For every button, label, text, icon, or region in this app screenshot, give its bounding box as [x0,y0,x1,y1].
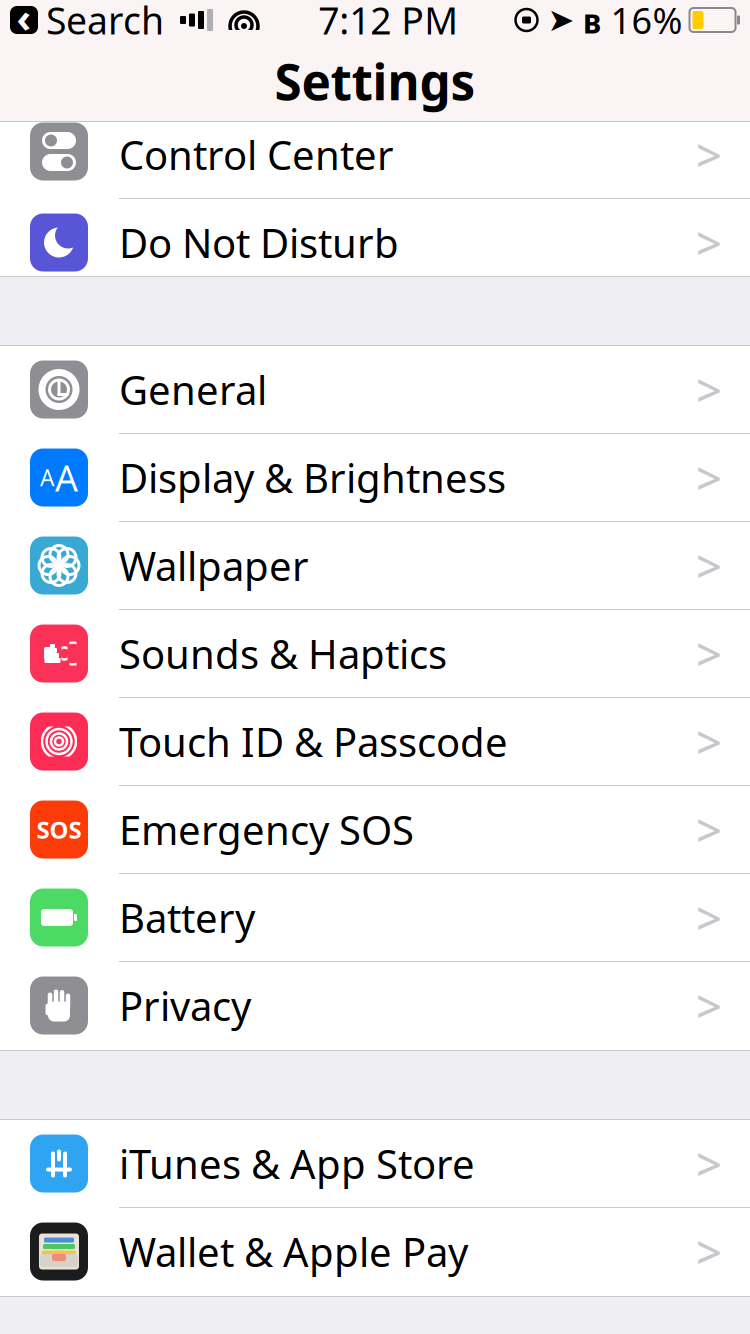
staticText: > [696,1133,722,1194]
staticText: Touch ID & Passcode [119,715,508,768]
staticText: 7:12 PM [318,0,458,45]
button[interactable]: SOS [0,786,750,874]
staticText: Do Not Disturb [119,216,399,269]
staticText: Settings [274,48,475,114]
button[interactable]: A [0,434,750,522]
staticText: > [696,623,722,684]
staticText: ‹ [16,0,31,43]
staticText: Battery [119,891,255,944]
staticText: > [696,359,722,420]
staticText: > [696,212,722,273]
staticText: > [696,447,722,508]
staticText: General [119,363,267,416]
staticText: Control Center [119,128,394,181]
staticText: ➤ [547,2,574,38]
staticText: 16% [610,0,682,44]
staticText: Wallpaper [119,539,309,592]
staticText: > [696,887,722,948]
staticText: Privacy [119,979,251,1032]
staticText: Emergency SOS [119,803,414,856]
button[interactable]: Battery [0,874,750,962]
staticText: > [696,799,722,860]
button[interactable]: Wallet & Apple Pay [0,1208,750,1296]
button[interactable]: Touch ID & Passcode [0,698,750,786]
button[interactable]: Wallpaper [0,522,750,610]
staticText: SOS [36,814,81,845]
staticText: iTunes & App Store [119,1137,475,1190]
button[interactable]: Privacy [0,962,750,1050]
staticText: Search [46,0,164,45]
staticText: Display & Brightness [119,451,506,504]
staticText: ʙ [582,0,602,43]
staticText: A [40,462,54,492]
button[interactable]: Control Center [0,111,750,199]
staticText: > [696,975,722,1036]
staticText: > [696,1221,722,1282]
staticText: > [696,535,722,596]
staticText: > [696,124,722,185]
staticText: > [696,711,722,772]
button[interactable]: General [0,346,750,434]
button[interactable]: Do Not Disturb [0,199,750,287]
staticText: A [55,454,78,501]
staticText: Sounds & Haptics [119,627,447,680]
button[interactable]: iTunes & App Store [0,1120,750,1208]
button[interactable]: Sounds & Haptics [0,610,750,698]
staticText: Wallet & Apple Pay [119,1225,468,1278]
